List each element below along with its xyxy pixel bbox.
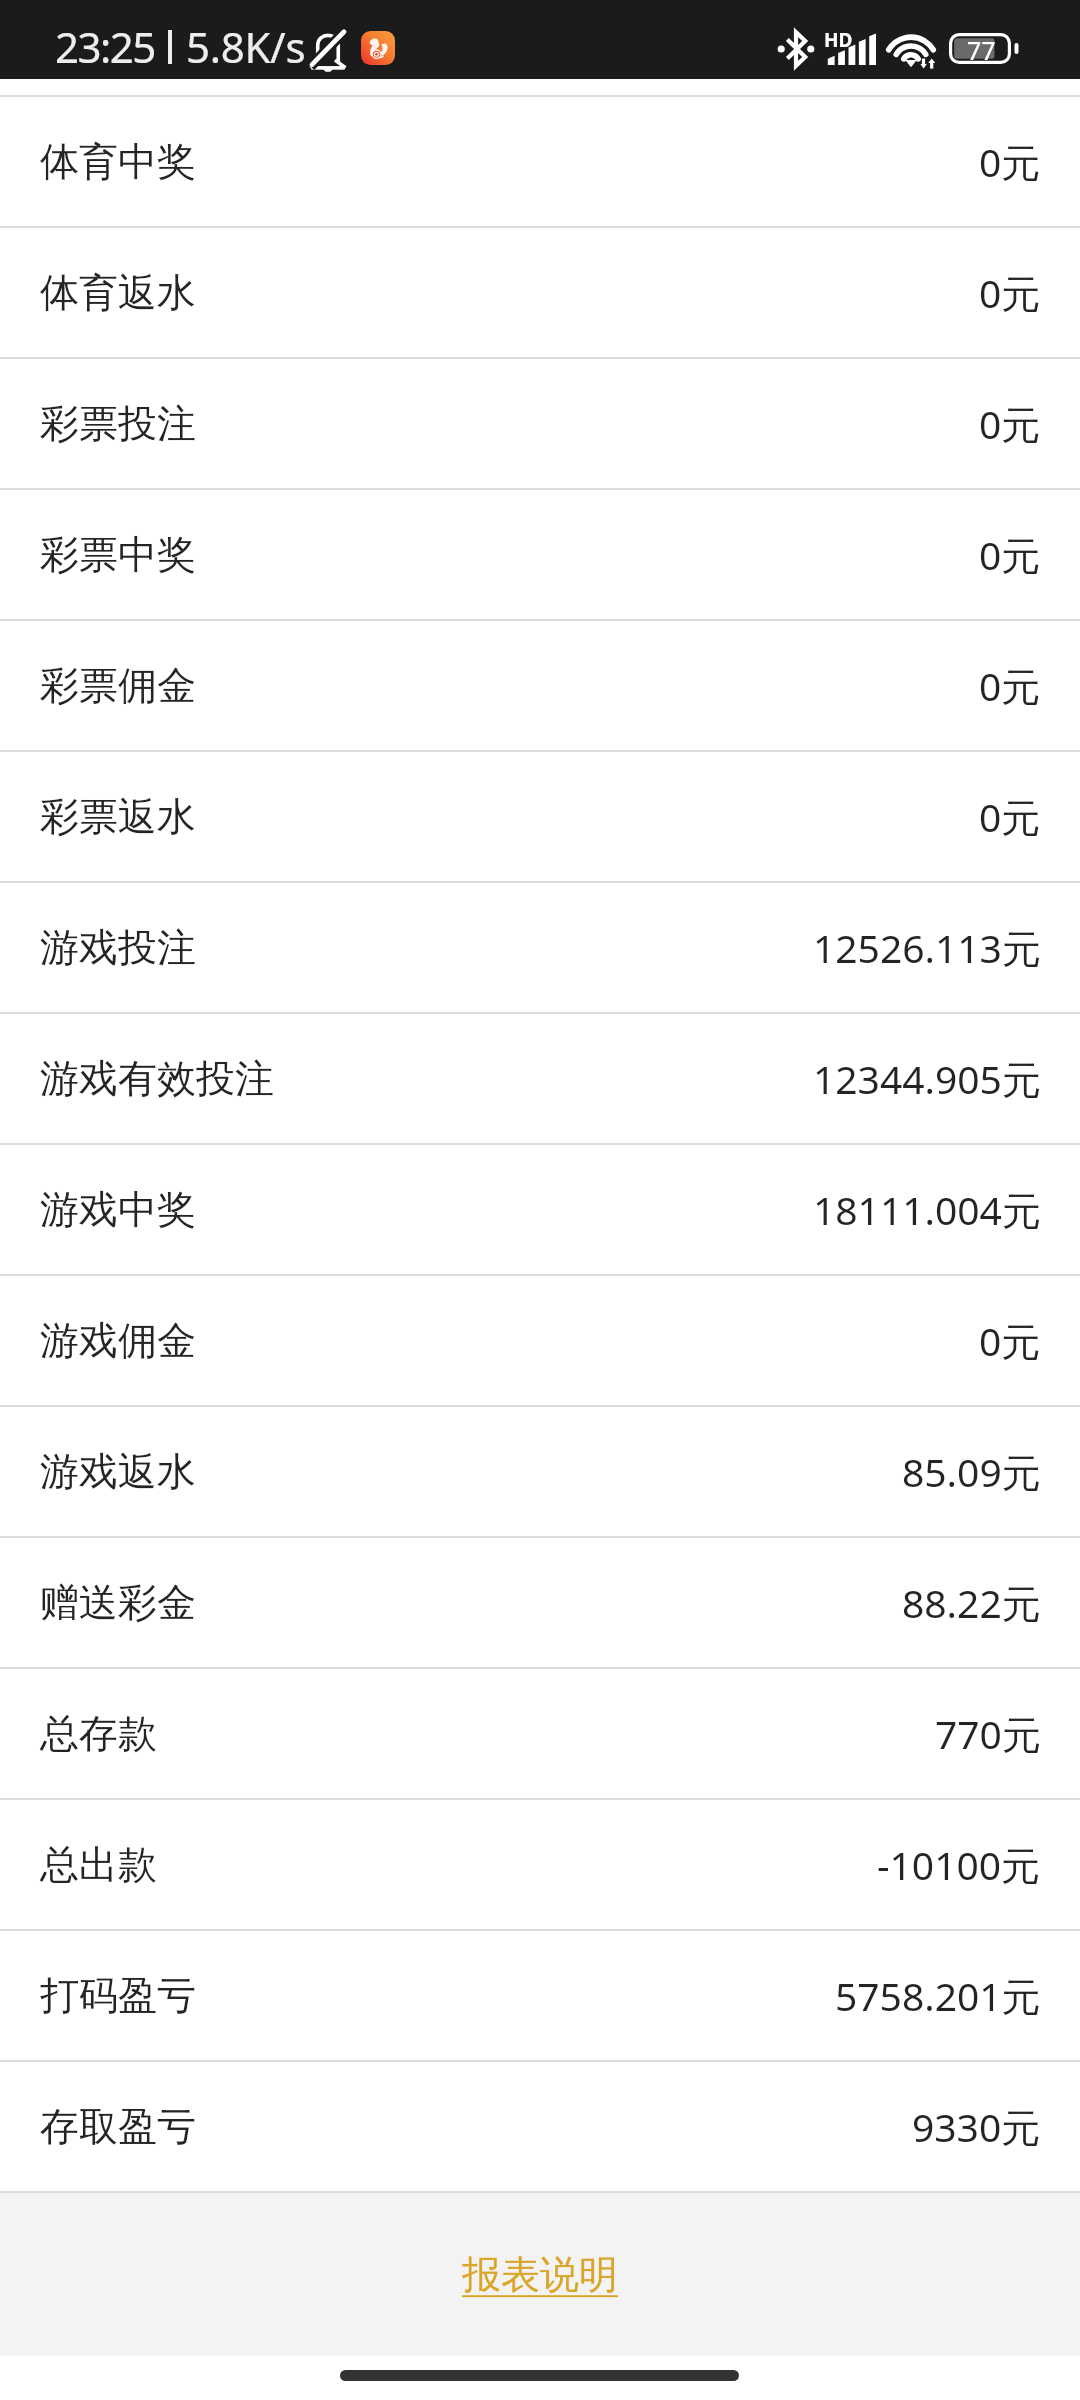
button[interactable]: 彩票佣金 bbox=[0, 621, 1080, 750]
button[interactable]: 彩票投注 bbox=[0, 359, 1080, 488]
staticText: 0元 bbox=[979, 790, 1041, 843]
staticText: 23:25 bbox=[55, 18, 155, 75]
staticText: 彩票中奖 bbox=[40, 530, 196, 579]
staticText: 体育返水 bbox=[40, 268, 196, 317]
other: Silent mode bbox=[310, 30, 346, 69]
staticText: HD bbox=[824, 27, 853, 53]
other: Bluetooth bbox=[779, 29, 813, 69]
staticText: 5.8K/s bbox=[186, 18, 306, 75]
button[interactable]: 体育返水 bbox=[0, 228, 1080, 357]
staticText: 报表说明 bbox=[462, 2250, 618, 2299]
button[interactable]: 游戏有效投注 bbox=[0, 1014, 1080, 1143]
staticText: 18111.004元 bbox=[813, 1183, 1041, 1236]
other: Signal strength bbox=[824, 31, 876, 65]
other: Home bbox=[340, 2370, 739, 2381]
staticText: 赠送彩金 bbox=[40, 1578, 196, 1627]
other: Battery 77 percent bbox=[949, 33, 1019, 64]
staticText: 0元 bbox=[979, 528, 1041, 581]
staticText: 0元 bbox=[979, 659, 1041, 712]
button[interactable]: 总存款 bbox=[0, 1669, 1080, 1798]
staticText: 游戏佣金 bbox=[40, 1316, 196, 1365]
staticText: 0元 bbox=[979, 135, 1041, 188]
staticText: 游戏投注 bbox=[40, 923, 196, 972]
staticText: 彩票投注 bbox=[40, 399, 196, 448]
staticText: 770元 bbox=[935, 1707, 1041, 1760]
staticText: 彩票佣金 bbox=[40, 661, 196, 710]
button[interactable]: 游戏佣金 bbox=[0, 1276, 1080, 1405]
button[interactable]: 彩票返水 bbox=[0, 752, 1080, 881]
button[interactable]: 报表说明 bbox=[422, 2226, 658, 2323]
other: Wi-Fi bbox=[886, 30, 938, 69]
button[interactable]: 存取盈亏 bbox=[0, 2062, 1080, 2191]
staticText: 游戏中奖 bbox=[40, 1185, 196, 1234]
button[interactable]: 体育中奖 bbox=[0, 97, 1080, 226]
staticText: -10100元 bbox=[877, 1838, 1041, 1891]
other: UC Browser bbox=[361, 31, 395, 65]
staticText: 0元 bbox=[979, 266, 1041, 319]
button[interactable]: 游戏投注 bbox=[0, 883, 1080, 1012]
button[interactable]: 游戏返水 bbox=[0, 1407, 1080, 1536]
staticText: 88.22元 bbox=[902, 1576, 1041, 1629]
staticText: 存取盈亏 bbox=[40, 2102, 196, 2151]
staticText: 0元 bbox=[979, 1314, 1041, 1367]
button[interactable]: 总出款 bbox=[0, 1800, 1080, 1929]
staticText: 0元 bbox=[979, 397, 1041, 450]
staticText: 游戏有效投注 bbox=[40, 1054, 274, 1103]
button[interactable]: 彩票中奖 bbox=[0, 490, 1080, 619]
staticText: 总存款 bbox=[40, 1709, 157, 1758]
staticText: 总出款 bbox=[40, 1840, 157, 1889]
staticText: 5758.201元 bbox=[835, 1969, 1041, 2022]
staticText: 12526.113元 bbox=[813, 921, 1041, 974]
staticText: 85.09元 bbox=[902, 1445, 1041, 1498]
staticText: 体育中奖 bbox=[40, 137, 196, 186]
staticText: 打码盈亏 bbox=[40, 1971, 196, 2020]
staticText: 9330元 bbox=[912, 2100, 1041, 2153]
button[interactable]: 打码盈亏 bbox=[0, 1931, 1080, 2060]
staticText: 游戏返水 bbox=[40, 1447, 196, 1496]
button[interactable]: 游戏中奖 bbox=[0, 1145, 1080, 1274]
staticText: 12344.905元 bbox=[813, 1052, 1041, 1105]
staticText: 彩票返水 bbox=[40, 792, 196, 841]
button[interactable]: 赠送彩金 bbox=[0, 1538, 1080, 1667]
staticText: 77 bbox=[967, 33, 996, 64]
